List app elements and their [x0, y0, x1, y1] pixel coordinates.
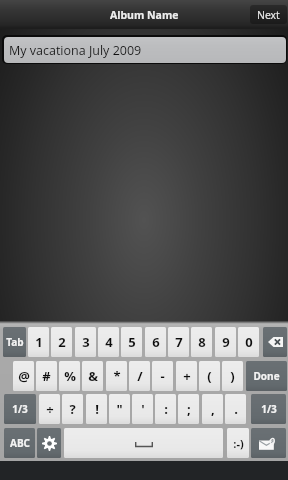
button[interactable]: 1 — [28, 327, 49, 357]
staticText: My vacationa July 2009 — [9, 42, 142, 59]
staticText: # — [42, 367, 51, 385]
button[interactable]: . — [225, 394, 246, 424]
button[interactable]: @ — [13, 361, 34, 391]
staticText: 1 — [35, 333, 43, 351]
staticText: * — [113, 367, 121, 385]
button[interactable]: ABC — [4, 428, 35, 458]
staticText: : — [164, 400, 168, 418]
button[interactable]: % — [59, 361, 80, 391]
staticText: ; — [187, 400, 191, 418]
staticText: 2 — [58, 333, 66, 351]
button[interactable]: 2 — [51, 327, 72, 357]
staticText: Album Name — [110, 8, 179, 22]
staticText: , — [211, 400, 215, 418]
button[interactable]: 0 — [238, 327, 259, 357]
button[interactable]: My vacationa July 2009 — [2, 35, 287, 64]
button[interactable]: # — [36, 361, 57, 391]
button[interactable]: + — [176, 361, 197, 391]
button[interactable]: : — [155, 394, 176, 424]
button[interactable]: 6 — [145, 327, 166, 357]
button[interactable]: 1/3 — [251, 394, 286, 424]
button[interactable]: 7 — [168, 327, 189, 357]
button[interactable]: 5 — [121, 327, 142, 357]
button[interactable]: " — [109, 394, 130, 424]
staticText: 4 — [105, 333, 113, 351]
button[interactable]: ' — [132, 394, 153, 424]
button[interactable]: :-) — [227, 428, 249, 458]
staticText: @ — [18, 367, 30, 385]
button[interactable]: ) — [222, 361, 243, 391]
staticText: - — [160, 367, 165, 385]
staticText: 6 — [152, 333, 160, 351]
staticText: ? — [69, 400, 76, 418]
staticText: 1/3 — [12, 402, 28, 416]
staticText: :-) — [233, 436, 244, 451]
staticText: / — [137, 367, 143, 385]
button[interactable]: 8 — [191, 327, 212, 357]
button[interactable]: / — [129, 361, 150, 391]
staticText: " — [116, 400, 123, 418]
button[interactable]: Attach — [251, 428, 286, 458]
staticText: Tab — [6, 335, 24, 349]
button[interactable]: ; — [178, 394, 199, 424]
button[interactable]: ÷ — [39, 394, 60, 424]
staticText: 8 — [198, 333, 206, 351]
button[interactable]: 1/3 — [4, 394, 36, 424]
staticText: 5 — [128, 333, 136, 351]
staticText: 7 — [175, 333, 183, 351]
staticText: ) — [230, 367, 235, 385]
staticText: Done — [253, 369, 280, 383]
button[interactable]: ? — [62, 394, 83, 424]
button[interactable]: 9 — [215, 327, 236, 357]
staticText: % — [64, 367, 76, 385]
button[interactable]: & — [82, 361, 103, 391]
button[interactable]: Settings — [37, 428, 61, 458]
button[interactable]: Tab — [3, 327, 26, 357]
button[interactable]: Done — [246, 361, 287, 391]
button[interactable]: Next — [250, 5, 287, 24]
staticText: ' — [141, 400, 145, 418]
staticText: 9 — [222, 333, 230, 351]
staticText: & — [88, 367, 98, 385]
button[interactable]: Backspace — [263, 327, 287, 357]
staticText: . — [234, 400, 238, 418]
button[interactable]: * — [106, 361, 127, 391]
staticText: 3 — [82, 333, 90, 351]
button[interactable]: - — [152, 361, 173, 391]
staticText: ! — [95, 400, 99, 418]
staticText: Next — [257, 8, 280, 22]
button[interactable]: 4 — [98, 327, 119, 357]
button[interactable]: ( — [199, 361, 220, 391]
staticText: ÷ — [46, 400, 54, 418]
button[interactable]: Space — [64, 428, 223, 458]
staticText: 0 — [245, 333, 253, 351]
button[interactable]: ! — [86, 394, 107, 424]
staticText: 1/3 — [261, 402, 277, 416]
staticText: ABC — [10, 436, 30, 450]
staticText: + — [183, 367, 191, 385]
staticText: ( — [207, 367, 212, 385]
button[interactable]: , — [202, 394, 223, 424]
button[interactable]: 3 — [75, 327, 96, 357]
